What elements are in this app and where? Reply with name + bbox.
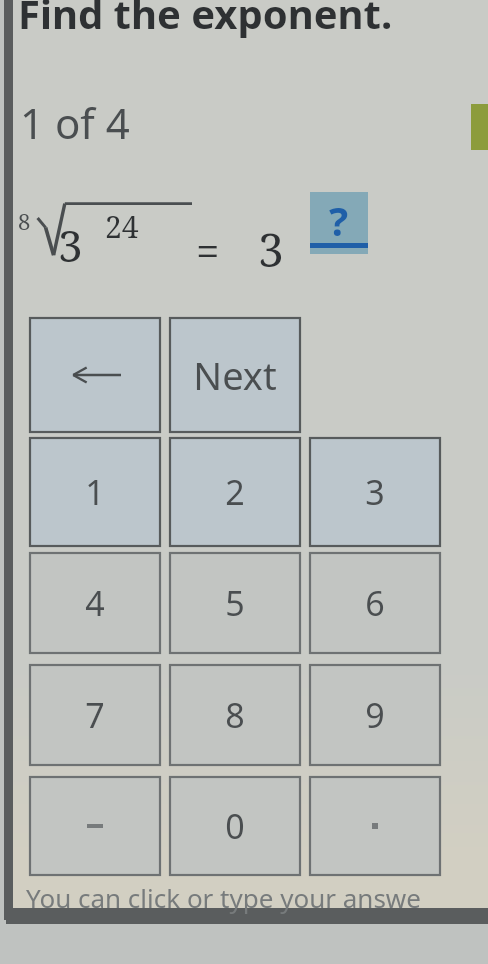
staticText: 8 [18, 206, 31, 236]
staticText: 7 [85, 692, 105, 738]
button[interactable]: 3 [310, 438, 440, 546]
staticText: 2 [225, 469, 245, 515]
button[interactable]: 2 [170, 438, 300, 546]
button[interactable]: 0 [170, 777, 300, 875]
staticText: 1 of 4 [20, 94, 130, 151]
staticText: 3 [258, 218, 284, 281]
staticText: 1 [85, 469, 105, 515]
staticText: 5 [225, 580, 245, 626]
button[interactable]: 1 [30, 438, 160, 546]
button[interactable]: 6 [310, 553, 440, 653]
button[interactable]: 5 [170, 553, 300, 653]
staticText: You can click or type your answe [26, 880, 421, 915]
staticText: 9 [365, 692, 385, 738]
button[interactable]: Decimal point [310, 777, 440, 875]
staticText: 4 [85, 580, 105, 626]
staticText: = [196, 222, 220, 279]
button[interactable]: Next [170, 318, 300, 432]
button[interactable]: Backspace [30, 318, 160, 432]
button[interactable]: 4 [30, 553, 160, 653]
staticText: 6 [365, 580, 385, 626]
button[interactable]: 9 [310, 665, 440, 765]
staticText: 0 [225, 803, 245, 849]
button[interactable]: 8 [170, 665, 300, 765]
staticText: 3 [58, 215, 83, 275]
button[interactable]: Answer blank [310, 192, 368, 254]
staticText: 24 [105, 206, 139, 247]
staticText: 3 [365, 469, 385, 515]
staticText: 8 [225, 692, 245, 738]
button[interactable]: 7 [30, 665, 160, 765]
staticText: Next [193, 349, 277, 401]
staticText: Find the exponent. [18, 0, 393, 40]
button[interactable]: Minus sign [30, 777, 160, 875]
staticText: ? [329, 193, 349, 247]
